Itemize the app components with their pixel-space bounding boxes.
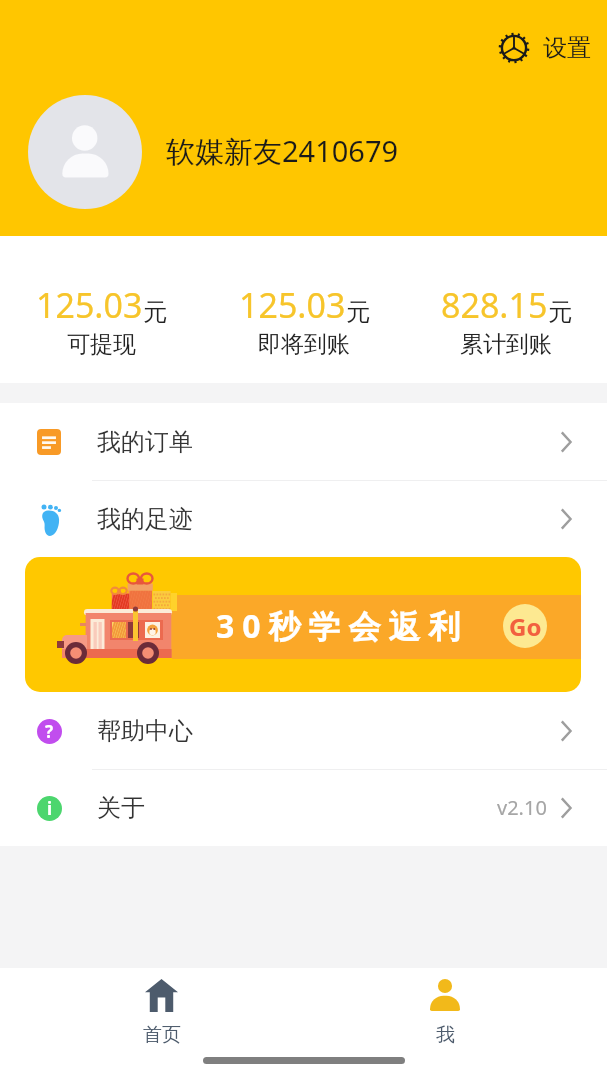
staticText: 元 [548, 297, 572, 327]
staticText: 元 [346, 297, 370, 327]
button[interactable]: 我的足迹 [0, 480, 607, 557]
staticText: 即将到账 [258, 330, 350, 359]
staticText: 软媒新友2410679 [166, 131, 399, 171]
button[interactable]: ? [0, 692, 607, 769]
staticText: 828.15 [441, 282, 548, 328]
staticText: 30秒学会返利 [216, 604, 469, 648]
staticText: 125.03 [36, 282, 143, 328]
button[interactable]: 30秒学会返利 [25, 557, 581, 692]
staticText: 可提现 [67, 330, 136, 359]
staticText: 我的订单 [97, 427, 193, 457]
staticText: 元 [143, 297, 167, 327]
staticText: 125.03 [239, 282, 346, 328]
button[interactable]: 828.15 [405, 282, 607, 359]
button[interactable]: 125.03 [0, 282, 203, 359]
staticText: 我 [436, 1023, 455, 1047]
staticText: i [47, 797, 53, 820]
button[interactable]: i [0, 769, 607, 846]
button[interactable]: 125.03 [203, 282, 405, 359]
button[interactable]: 我 [303, 968, 587, 1047]
staticText: 设置 [543, 33, 591, 63]
staticText: 帮助中心 [97, 716, 193, 746]
button[interactable]: Go [503, 604, 547, 648]
staticText: 关于 [97, 793, 145, 823]
button[interactable]: 设置 [497, 31, 591, 65]
staticText: 首页 [143, 1023, 181, 1047]
staticText: Go [509, 610, 542, 643]
staticText: 累计到账 [460, 330, 552, 359]
staticText: ? [45, 720, 54, 743]
staticText: v2.10 [497, 794, 547, 821]
staticText: 我的足迹 [97, 504, 193, 534]
button[interactable]: 首页 [20, 968, 303, 1047]
button[interactable] [28, 95, 142, 209]
button[interactable]: 我的订单 [0, 403, 607, 480]
